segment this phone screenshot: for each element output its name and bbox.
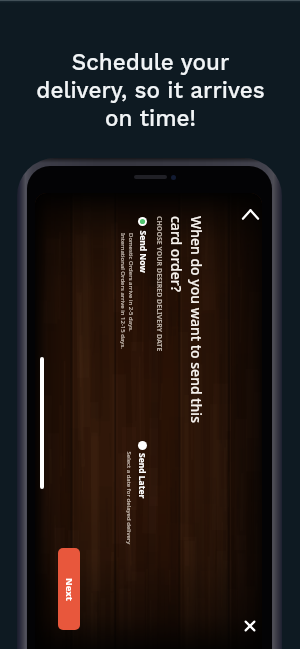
staticText: Send Later	[136, 453, 148, 499]
staticText: Next	[63, 578, 76, 601]
staticText: Select a date for delayed delivery	[124, 451, 132, 544]
staticText: CHOOSE YOUR DESIRED DELIVERY DATE	[154, 216, 164, 352]
staticText: Schedule your delivery, so it arrives on…	[36, 49, 265, 132]
staticText: Send Now	[136, 230, 148, 273]
staticText: When do you want to send this card order…	[167, 216, 206, 423]
button[interactable]: Close	[240, 616, 260, 636]
button[interactable]: Next	[58, 548, 80, 630]
button[interactable]: Back	[236, 200, 262, 229]
staticText: Domestic Orders arrive in 2-5 days. Inte…	[119, 233, 135, 349]
